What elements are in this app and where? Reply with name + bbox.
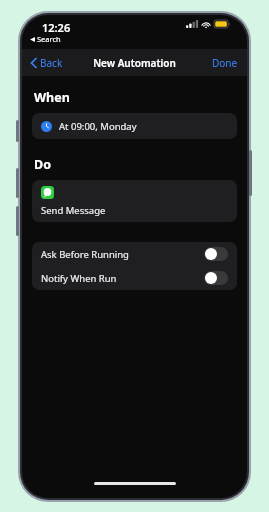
staticText: Send Message: [41, 204, 106, 217]
staticText: Done: [212, 56, 238, 70]
staticText: 12:26: [42, 20, 71, 35]
staticText: Back: [40, 56, 63, 70]
staticText: Search: [37, 34, 61, 44]
staticText: When: [34, 89, 70, 106]
button[interactable]: Notify When Run: [32, 266, 237, 290]
button[interactable]: Done: [209, 53, 241, 73]
staticText: Do: [34, 156, 51, 173]
staticText: Notify When Run: [41, 272, 204, 285]
button[interactable]: Ask Before Running: [204, 247, 228, 261]
button[interactable]: Notify When Run: [204, 271, 228, 285]
button[interactable]: Send Message: [32, 180, 237, 222]
button[interactable]: Ask Before Running: [32, 242, 237, 266]
staticText: Ask Before Running: [41, 248, 204, 261]
button[interactable]: At 09:00, Monday: [32, 113, 237, 139]
button[interactable]: Back: [28, 53, 66, 73]
staticText: New Automation: [93, 56, 176, 70]
staticText: At 09:00, Monday: [59, 120, 137, 133]
